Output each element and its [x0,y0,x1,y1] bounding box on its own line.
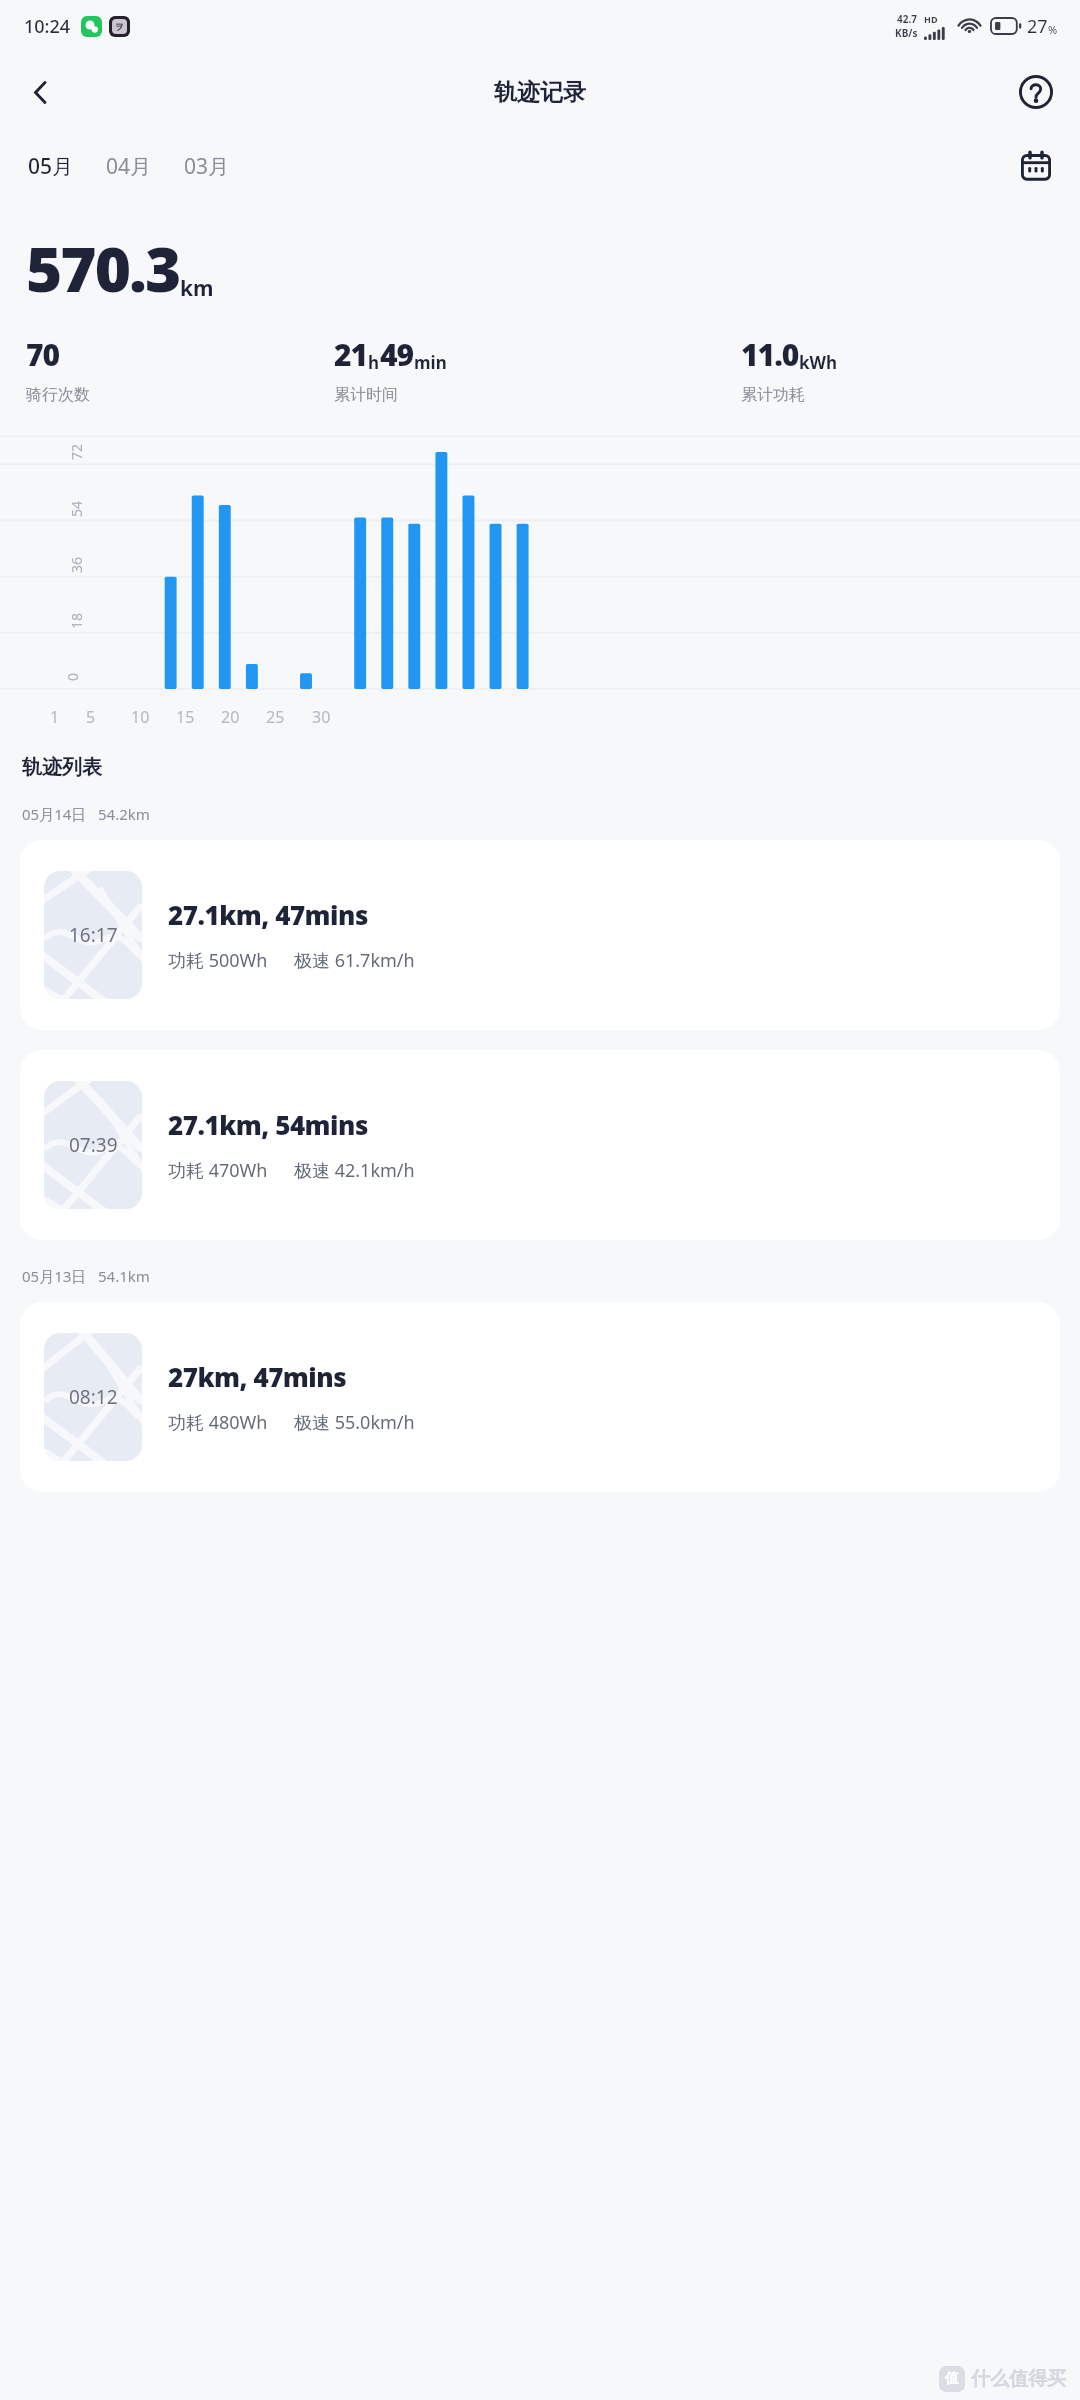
staticText: 49 [380,334,414,375]
button[interactable]: 08:12 [20,1302,1060,1492]
staticText: 值 [945,2370,959,2388]
staticText: 07:39 [69,1132,118,1158]
staticText: 30 [312,706,331,728]
staticText: 16:17 [69,922,118,948]
staticText: 05月14日 54.2km [22,804,150,824]
staticText: 累计功耗 [741,385,805,405]
staticText: 18 [67,612,86,629]
staticText: 10:24 [24,14,71,39]
staticText: 27km, 47mins [168,1359,347,1394]
staticText: 05月13日 54.1km [22,1266,150,1286]
staticText: 15 [176,706,195,728]
staticText: 极速 61.7km/h [294,948,415,973]
button[interactable]: Back [12,64,68,120]
staticText: 功耗 480Wh [168,1410,268,1435]
staticText: 05月 [28,152,74,181]
staticText: 27 [1027,14,1048,39]
staticText: 功耗 470Wh [168,1158,268,1183]
staticText: 轨迹列表 [22,755,102,780]
staticText: kWh [799,351,838,374]
staticText: HD [924,13,938,25]
button[interactable]: 03月 [176,146,238,187]
staticText: 0 [63,672,82,681]
button[interactable]: Calendar [1012,142,1060,190]
staticText: KB/s [895,26,918,40]
staticText: 36 [67,556,86,573]
staticText: 11.0 [741,334,799,375]
staticText: 10 [131,706,150,728]
staticText: % [1048,22,1058,37]
staticText: min [414,351,447,374]
staticText: 25 [266,706,285,728]
staticText: 70 [26,334,60,375]
staticText: 27.1km, 47mins [168,897,368,932]
staticText: 20 [221,706,240,728]
staticText: 功耗 500Wh [168,948,268,973]
staticText: 08:12 [69,1384,118,1410]
staticText: 极速 55.0km/h [294,1410,415,1435]
staticText: 21 [334,334,368,375]
button[interactable]: 04月 [98,146,160,187]
staticText: 1 [50,706,60,728]
button[interactable]: 16:17 [20,840,1060,1030]
staticText: 42.7 [897,12,917,26]
staticText: 累计时间 [334,385,398,405]
staticText: 骑行次数 [26,385,90,405]
staticText: 极速 42.1km/h [294,1158,415,1183]
staticText: h [368,351,380,374]
staticText: 轨迹记录 [494,78,586,107]
staticText: 什么值得买 [971,2367,1066,2391]
button[interactable]: Help [1008,64,1064,120]
staticText: 54 [67,500,86,517]
staticText: ヲ [115,21,125,32]
button[interactable]: 05月 [20,146,82,187]
staticText: 72 [67,443,86,460]
staticText: 5 [86,706,96,728]
staticText: 03月 [184,152,230,181]
staticText: km [180,274,214,303]
button[interactable]: 07:39 [20,1050,1060,1240]
staticText: 04月 [106,152,152,181]
staticText: 570.3 [26,226,180,310]
staticText: 27.1km, 54mins [168,1107,368,1142]
